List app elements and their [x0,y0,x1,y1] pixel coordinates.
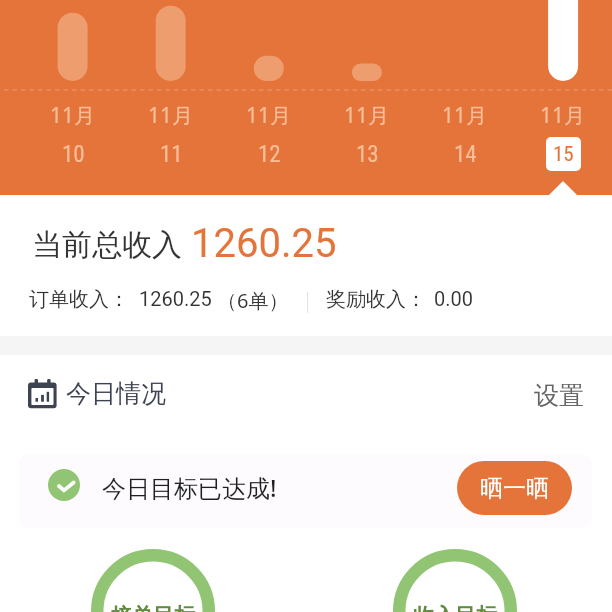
staticText: 12 [258,141,281,168]
staticText: 今日情况 [66,378,166,409]
staticText: 接单目标 [111,603,195,612]
staticText: 13 [356,141,379,168]
button[interactable]: 收入目标 [393,549,517,612]
button[interactable]: 今日情况 [28,378,166,409]
staticText: 当前总收入 [32,226,182,264]
staticText: 11月 [442,101,488,130]
button[interactable]: 设置 [534,380,584,411]
button[interactable]: 11月 [24,0,122,195]
button[interactable]: 11月 [318,0,416,195]
staticText: 11月 [50,101,96,130]
button[interactable]: 接单目标 [91,549,215,612]
staticText: 11月 [148,101,194,130]
button[interactable]: 今日目标已达成! [18,454,592,528]
staticText: 11 [160,141,183,168]
staticText: 11月 [540,101,586,130]
staticText: 10 [62,141,85,168]
staticText: 11月 [246,101,292,130]
staticText: 今日目标已达成! [102,471,277,504]
staticText: 15 [553,142,574,167]
staticText: 晒一晒 [480,474,549,503]
button[interactable]: 11月 [220,0,318,195]
staticText: 0.00 [434,287,473,310]
staticText: 订单收入： [29,287,129,312]
staticText: 1260.25 [191,220,337,267]
staticText: 11月 [344,101,390,130]
button[interactable]: 晒一晒 [457,461,572,515]
staticText: （6单） [217,287,289,314]
button[interactable]: 11月 [514,0,612,195]
staticText: 1260.25 [139,287,212,310]
button[interactable]: 11月 [122,0,220,195]
staticText: 收入目标 [413,603,497,612]
staticText: 14 [454,141,477,168]
staticText: 设置 [534,380,584,411]
button[interactable]: 11月 [416,0,514,195]
staticText: 奖励收入： [326,287,426,312]
